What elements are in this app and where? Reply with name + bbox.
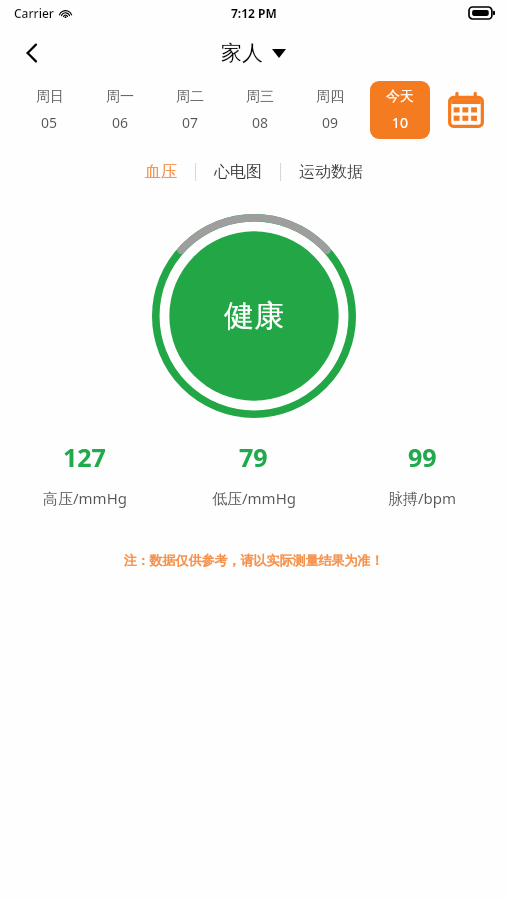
staticText: 脉搏/bpm <box>388 488 457 508</box>
button[interactable]: 99 <box>338 440 507 508</box>
staticText: 10 <box>392 113 409 132</box>
staticText: 健康 <box>224 297 284 335</box>
staticText: 08 <box>252 113 269 132</box>
staticText: 05 <box>41 113 58 132</box>
staticText: 家人 <box>221 40 263 66</box>
staticText: 今天 <box>386 88 414 106</box>
staticText: 低压/mmHg <box>212 488 296 508</box>
button[interactable]: Calendar <box>435 82 497 138</box>
button[interactable]: 血压 <box>135 158 187 186</box>
staticText: 注：数据仅供参考，请以实际测量结果为准！ <box>0 552 507 568</box>
staticText: 高压/mmHg <box>43 488 127 508</box>
button[interactable]: 运动数据 <box>289 158 373 186</box>
staticText: Carrier <box>14 5 54 21</box>
button[interactable]: 家人 <box>221 40 286 66</box>
staticText: 127 <box>63 440 106 474</box>
staticText: 09 <box>322 113 339 132</box>
staticText: 07 <box>182 113 199 132</box>
button[interactable]: 周日 <box>19 81 80 139</box>
button[interactable]: 79 <box>169 440 338 508</box>
staticText: 心电图 <box>214 162 262 182</box>
staticText: 周三 <box>246 88 274 106</box>
button[interactable]: Back <box>8 29 56 77</box>
staticText: 06 <box>112 113 129 132</box>
button[interactable]: 周一 <box>90 81 150 139</box>
staticText: 99 <box>408 440 437 474</box>
staticText: 周一 <box>106 88 134 106</box>
staticText: 7:12 PM <box>231 5 277 21</box>
button[interactable]: 127 <box>0 440 169 508</box>
staticText: 79 <box>239 440 268 474</box>
staticText: 运动数据 <box>299 162 363 182</box>
staticText: 周四 <box>316 88 344 106</box>
button[interactable]: 周三 <box>230 81 290 139</box>
staticText: 血压 <box>145 162 177 182</box>
staticText: 周日 <box>36 88 64 106</box>
button[interactable]: 今天 <box>370 81 430 139</box>
button[interactable]: 周四 <box>300 81 360 139</box>
button[interactable]: 周二 <box>160 81 220 139</box>
button[interactable]: 心电图 <box>204 158 272 186</box>
staticText: 周二 <box>176 88 204 106</box>
